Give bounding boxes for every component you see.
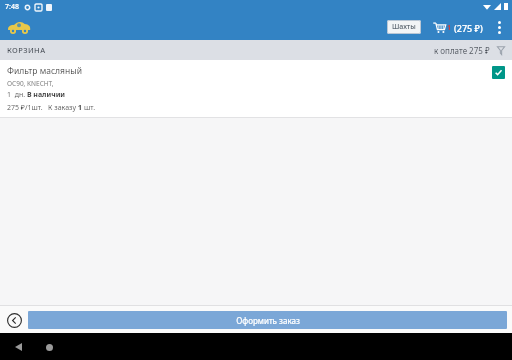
button[interactable]: 1 bbox=[431, 18, 485, 37]
button[interactable]: Back bbox=[10, 339, 26, 355]
button[interactable]: More options bbox=[491, 16, 507, 38]
staticText: КОРЗИНА bbox=[7, 45, 46, 55]
button[interactable]: Filter bbox=[495, 44, 507, 56]
staticText: OC90, KNECHT, bbox=[7, 79, 54, 88]
button[interactable]: Home bbox=[41, 339, 57, 355]
staticText: Шахты bbox=[392, 22, 416, 32]
staticText: Фильтр масляный bbox=[7, 65, 82, 77]
staticText: к оплате 275 ₽ bbox=[434, 45, 490, 56]
button[interactable]: Selected bbox=[492, 66, 505, 79]
button[interactable]: Шахты bbox=[387, 20, 421, 34]
button[interactable]: Back bbox=[5, 311, 23, 329]
staticText: 1 bbox=[447, 23, 452, 33]
staticText: (275 ₽) bbox=[454, 22, 483, 34]
staticText: 1 дн. В наличии bbox=[7, 90, 66, 100]
staticText: 7:48 bbox=[5, 2, 19, 12]
staticText: Оформить заказ bbox=[236, 315, 300, 326]
button[interactable]: Logo bbox=[6, 18, 32, 36]
staticText: 275 ₽/1шт. К заказу 1 шт. bbox=[7, 102, 96, 112]
button[interactable]: Оформить заказ bbox=[28, 311, 507, 329]
button[interactable]: Фильтр масляный bbox=[0, 60, 512, 118]
